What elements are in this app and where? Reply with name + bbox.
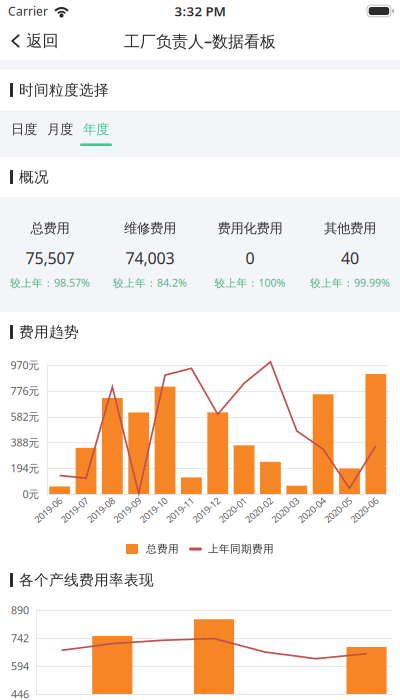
staticText: Carrier bbox=[8, 3, 48, 19]
staticText: 2020-06 bbox=[348, 504, 381, 516]
staticText: 2019-10 bbox=[137, 504, 170, 516]
staticText: 维修费用 bbox=[124, 220, 176, 236]
button[interactable]: 年度 bbox=[78, 110, 114, 157]
staticText: 970元 bbox=[10, 358, 39, 372]
staticText: 日度 bbox=[11, 121, 37, 137]
staticText: 2020-05 bbox=[321, 504, 354, 516]
staticText: 较上年：99.99% bbox=[310, 276, 390, 290]
staticText: 年度 bbox=[83, 121, 109, 137]
staticText: 上年同期费用 bbox=[208, 542, 274, 555]
staticText: 446 bbox=[11, 687, 29, 700]
staticText: 其他费用 bbox=[324, 220, 376, 236]
staticText: 2019-06 bbox=[32, 504, 65, 516]
staticText: 0元 bbox=[22, 487, 39, 501]
staticText: 概况 bbox=[19, 168, 49, 186]
staticText: 总费用 bbox=[146, 542, 179, 555]
staticText: 2020-01 bbox=[216, 504, 249, 516]
staticText: 较上年：84.2% bbox=[113, 276, 187, 290]
button[interactable]: 返回 bbox=[0, 22, 68, 60]
staticText: 388元 bbox=[10, 435, 39, 449]
staticText: 2020-02 bbox=[242, 504, 275, 516]
staticText: 890 bbox=[11, 603, 29, 617]
staticText: 594 bbox=[11, 659, 29, 673]
staticText: 各个产线费用率表现 bbox=[19, 571, 154, 589]
staticText: 194元 bbox=[10, 461, 39, 475]
staticText: 月度 bbox=[47, 121, 73, 137]
staticText: 2019-08 bbox=[84, 504, 117, 516]
staticText: 返回 bbox=[26, 31, 58, 51]
staticText: 40 bbox=[341, 247, 359, 269]
staticText: 74,003 bbox=[125, 247, 174, 269]
staticText: 582元 bbox=[10, 409, 39, 424]
staticText: 总费用 bbox=[30, 220, 69, 236]
staticText: 工厂负责人–数据看板 bbox=[124, 30, 276, 52]
staticText: 742 bbox=[11, 631, 29, 645]
staticText: 时间粒度选择 bbox=[19, 81, 109, 99]
button[interactable]: 日度 bbox=[6, 110, 42, 157]
staticText: 较上年：98.57% bbox=[10, 276, 90, 290]
staticText: 费用化费用 bbox=[217, 220, 282, 236]
staticText: 2020-04 bbox=[295, 504, 328, 516]
staticText: 2019-07 bbox=[58, 504, 91, 516]
staticText: 776元 bbox=[10, 384, 39, 398]
button[interactable]: 月度 bbox=[42, 110, 78, 157]
staticText: 2019-11 bbox=[163, 504, 196, 516]
staticText: 3:32 PM bbox=[174, 2, 225, 20]
staticText: 2019-12 bbox=[190, 504, 223, 516]
staticText: 较上年：100% bbox=[214, 276, 285, 290]
staticText: 费用趋势 bbox=[19, 323, 79, 341]
staticText: 75,507 bbox=[25, 247, 74, 269]
staticText: 2019-09 bbox=[111, 504, 144, 516]
staticText: 0 bbox=[245, 247, 254, 269]
staticText: 2020-03 bbox=[269, 504, 302, 516]
